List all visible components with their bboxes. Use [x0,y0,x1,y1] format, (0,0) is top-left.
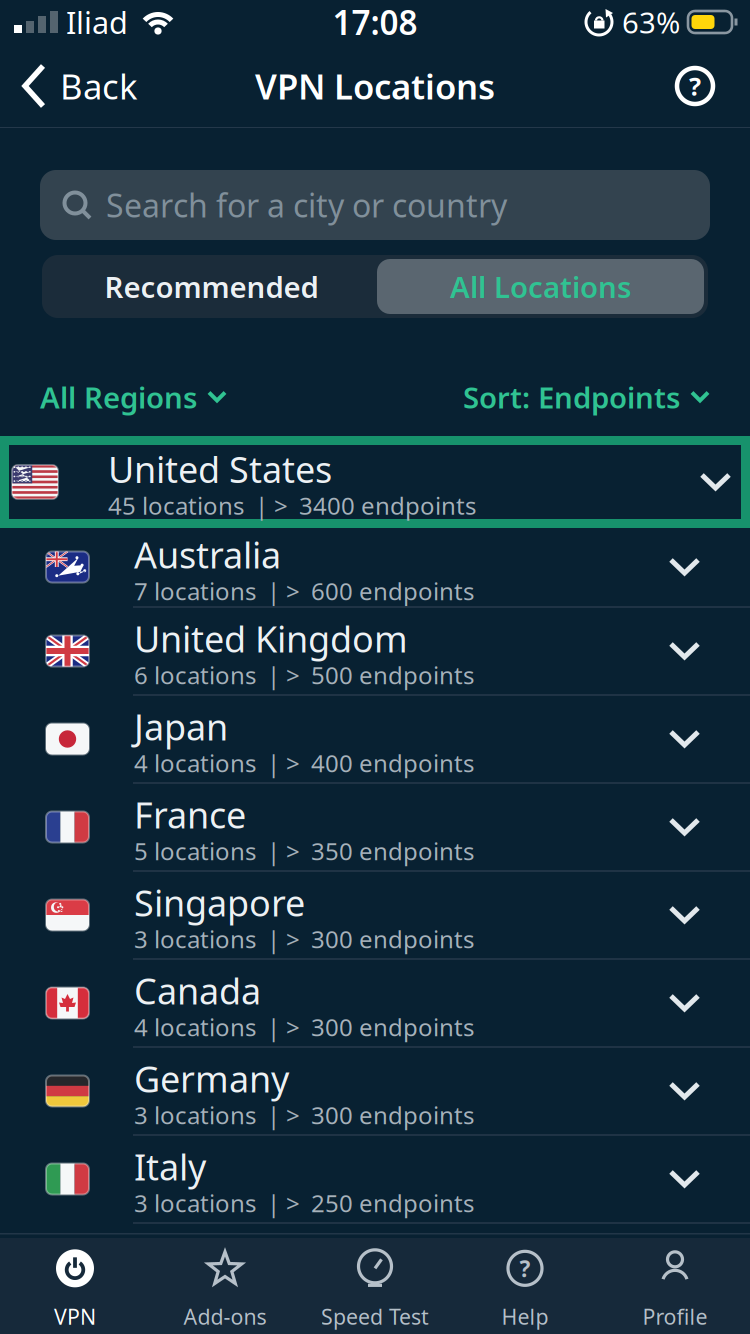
staticText: Iliad [66,2,128,42]
button[interactable]: France [0,784,750,872]
button[interactable]: Australia [0,528,750,608]
staticText: Singapore [134,879,305,926]
staticText: Japan [134,703,228,750]
staticText: 3400 endpoints [299,490,476,521]
button[interactable]: Japan [0,696,750,784]
staticText: 4 locations [134,747,256,779]
staticText: | > [267,1011,300,1043]
staticText: 17:08 [332,0,417,44]
staticText: 5 locations [134,835,256,867]
button[interactable]: VPN [0,1242,150,1331]
staticText: Canada [134,967,261,1014]
staticText: 7 locations [134,575,256,607]
button[interactable]: Sort: Endpoints [463,377,710,416]
staticText: 300 endpoints [311,1099,474,1131]
button[interactable]: United Kingdom [0,608,750,696]
button[interactable]: ? [450,1242,600,1331]
staticText: | > [267,835,300,867]
staticText: 63% [622,2,680,41]
staticText: VPN [54,1302,96,1331]
button[interactable]: Back [0,63,138,109]
staticText: | > [267,575,300,607]
staticText: All Regions [40,377,197,416]
staticText: Sort: Endpoints [463,377,680,416]
staticText: | > [255,490,288,521]
button[interactable]: Profile [600,1242,750,1331]
staticText: VPN Locations [255,63,495,109]
staticText: France [134,791,246,838]
button[interactable]: Help [674,65,750,107]
staticText: Germany [134,1055,289,1102]
staticText: 600 endpoints [311,575,474,607]
staticText: Profile [642,1302,707,1331]
staticText: 45 locations [108,490,244,521]
staticText: Search for a city or country [106,184,507,226]
staticText: Australia [134,531,281,578]
staticText: Back [60,63,138,109]
staticText: ? [519,1253,530,1283]
staticText: Help [501,1302,548,1331]
staticText: 4 locations [134,1011,256,1043]
staticText: 400 endpoints [311,747,474,779]
staticText: | > [267,747,300,779]
button[interactable]: United States [0,436,750,528]
staticText: Recommended [104,267,318,306]
staticText: | > [267,659,300,691]
button[interactable]: Canada [0,960,750,1048]
button[interactable]: Speed Test [300,1242,450,1331]
staticText: | > [267,1099,300,1131]
button[interactable]: Italy [0,1136,750,1224]
staticText: 350 endpoints [311,835,474,867]
staticText: 3 locations [134,1099,256,1131]
button[interactable]: All Regions [40,377,227,416]
staticText: Speed Test [321,1302,429,1331]
staticText: Italy [134,1143,206,1190]
staticText: 6 locations [134,659,256,691]
button[interactable]: Singapore [0,872,750,960]
button[interactable]: Search for a city or country [0,170,750,240]
staticText: United States [108,445,332,493]
button[interactable]: Add-ons [150,1242,300,1331]
staticText: 3 locations [134,1187,256,1219]
button[interactable]: Germany [0,1048,750,1136]
staticText: 500 endpoints [311,659,474,691]
staticText: 250 endpoints [311,1187,474,1219]
staticText: 300 endpoints [311,923,474,955]
staticText: Add-ons [183,1302,266,1331]
button[interactable]: All Locations [377,259,704,314]
button[interactable]: Recommended [46,259,377,314]
staticText: | > [267,1187,300,1219]
staticText: ? [689,69,701,103]
staticText: 300 endpoints [311,1011,474,1043]
staticText: All Locations [450,267,631,306]
staticText: | > [267,923,300,955]
staticText: United Kingdom [134,615,408,662]
staticText: 3 locations [134,923,256,955]
